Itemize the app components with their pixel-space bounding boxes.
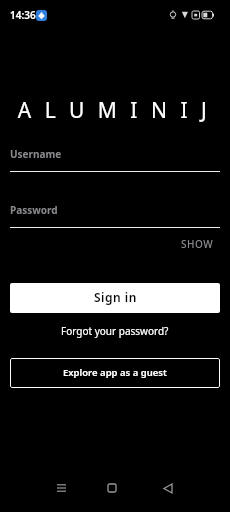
staticText: Sign in <box>94 289 137 305</box>
button[interactable]: Forgot your password? <box>0 324 230 338</box>
button[interactable]: SHOW <box>0 237 214 251</box>
staticText: SHOW <box>181 237 214 251</box>
staticText: Explore app as a guest <box>63 366 167 379</box>
button[interactable] <box>98 474 126 502</box>
staticText: Password <box>10 203 58 217</box>
staticText: Username <box>10 147 62 161</box>
button[interactable] <box>154 474 182 502</box>
button[interactable] <box>47 474 75 502</box>
button[interactable]: Sign in <box>10 283 220 313</box>
button[interactable]: Explore app as a guest <box>10 358 220 388</box>
staticText: ALUMINIJ <box>4 96 230 125</box>
staticText: Forgot your password? <box>61 324 169 338</box>
staticText: 14:36 <box>10 8 36 22</box>
